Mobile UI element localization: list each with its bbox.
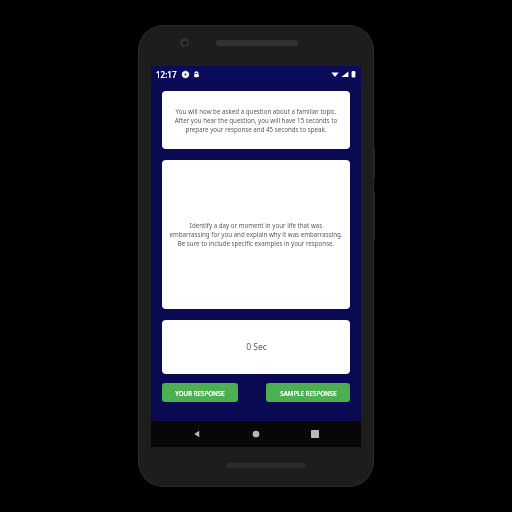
button[interactable]: SAMPLE RESPONSE bbox=[266, 383, 350, 402]
button[interactable]: Home bbox=[243, 421, 269, 447]
staticText: You will now be asked a question about a… bbox=[170, 107, 342, 134]
staticText: 12:17 bbox=[156, 69, 177, 80]
staticText: SAMPLE RESPONSE bbox=[280, 389, 337, 397]
staticText: 0 Sec bbox=[246, 341, 267, 353]
button[interactable]: Back bbox=[184, 421, 210, 447]
button[interactable]: Recent apps bbox=[302, 421, 328, 447]
staticText: Identify a day or moment in your life th… bbox=[169, 221, 343, 248]
button[interactable]: YOUR RESPONSE bbox=[162, 383, 238, 402]
staticText: YOUR RESPONSE bbox=[175, 389, 225, 397]
